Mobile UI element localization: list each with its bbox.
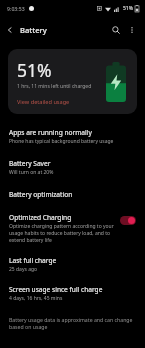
button[interactable]: View detailed usage bbox=[17, 98, 70, 106]
button[interactable]: Search bbox=[108, 22, 124, 38]
staticText: Will turn on at 20% bbox=[9, 169, 54, 176]
staticText: Battery Saver bbox=[9, 159, 51, 168]
button[interactable]: Last full charge bbox=[0, 254, 145, 275]
button[interactable]: Optimized Charging toggle bbox=[120, 216, 136, 225]
staticText: Phone has typical background battery usa… bbox=[9, 138, 114, 145]
staticText: 9:03:53 bbox=[7, 5, 25, 12]
button[interactable]: Screen usage since full charge bbox=[0, 283, 145, 304]
staticText: Screen usage since full charge bbox=[9, 285, 103, 294]
button[interactable]: More options bbox=[124, 22, 140, 38]
button[interactable]: Optimized Charging bbox=[0, 211, 145, 246]
staticText: Optimized Charging bbox=[9, 213, 72, 222]
staticText: 51% bbox=[17, 58, 52, 82]
staticText: 25 days ago bbox=[9, 266, 38, 273]
staticText: 51% bbox=[123, 5, 133, 12]
staticText: Battery optimization bbox=[9, 190, 73, 199]
button[interactable]: Apps are running normally bbox=[0, 126, 145, 147]
button[interactable]: Back bbox=[0, 22, 20, 38]
staticText: Battery bbox=[20, 25, 47, 35]
button[interactable]: Battery optimization bbox=[0, 188, 145, 201]
staticText: Optimize charging pattern according to y… bbox=[9, 223, 114, 244]
staticText: Last full charge bbox=[9, 256, 57, 265]
button[interactable]: Battery Saver bbox=[0, 157, 145, 178]
button[interactable]: 51% bbox=[8, 49, 137, 114]
staticText: Apps are running normally bbox=[9, 128, 92, 137]
staticText: 4 days, 16 hrs, 45 mins bbox=[9, 295, 63, 302]
staticText: 1 hrs, 11 mins left until charged bbox=[17, 83, 92, 90]
staticText: Battery usage data is approximate and ca… bbox=[9, 316, 136, 331]
